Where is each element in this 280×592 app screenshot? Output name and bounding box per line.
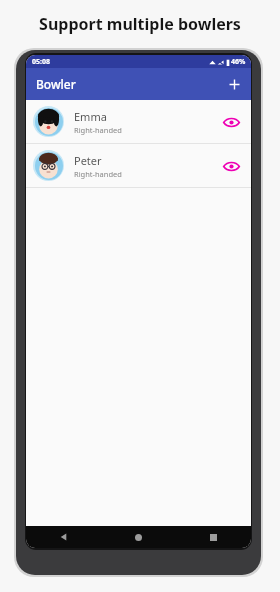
button[interactable]: Recent apps (176, 526, 251, 548)
staticText: Right-handed (74, 125, 122, 135)
staticText: Right-handed (74, 169, 122, 179)
button[interactable]: Select bowler Emma (218, 109, 244, 135)
button[interactable]: Home (101, 526, 176, 548)
staticText: Bowler (36, 76, 76, 92)
button[interactable]: Emma (26, 100, 251, 143)
button[interactable]: Add bowler (223, 73, 245, 95)
staticText: 05:08 (32, 57, 50, 67)
staticText: Support multiple bowlers (39, 13, 241, 35)
staticText: Emma (74, 109, 107, 124)
button[interactable]: Select bowler Peter (218, 153, 244, 179)
button[interactable]: Peter (26, 144, 251, 187)
staticText: 46% (231, 57, 246, 67)
button[interactable]: Back (26, 526, 101, 548)
button[interactable]: Bowler (26, 68, 251, 100)
staticText: Peter (74, 153, 102, 168)
